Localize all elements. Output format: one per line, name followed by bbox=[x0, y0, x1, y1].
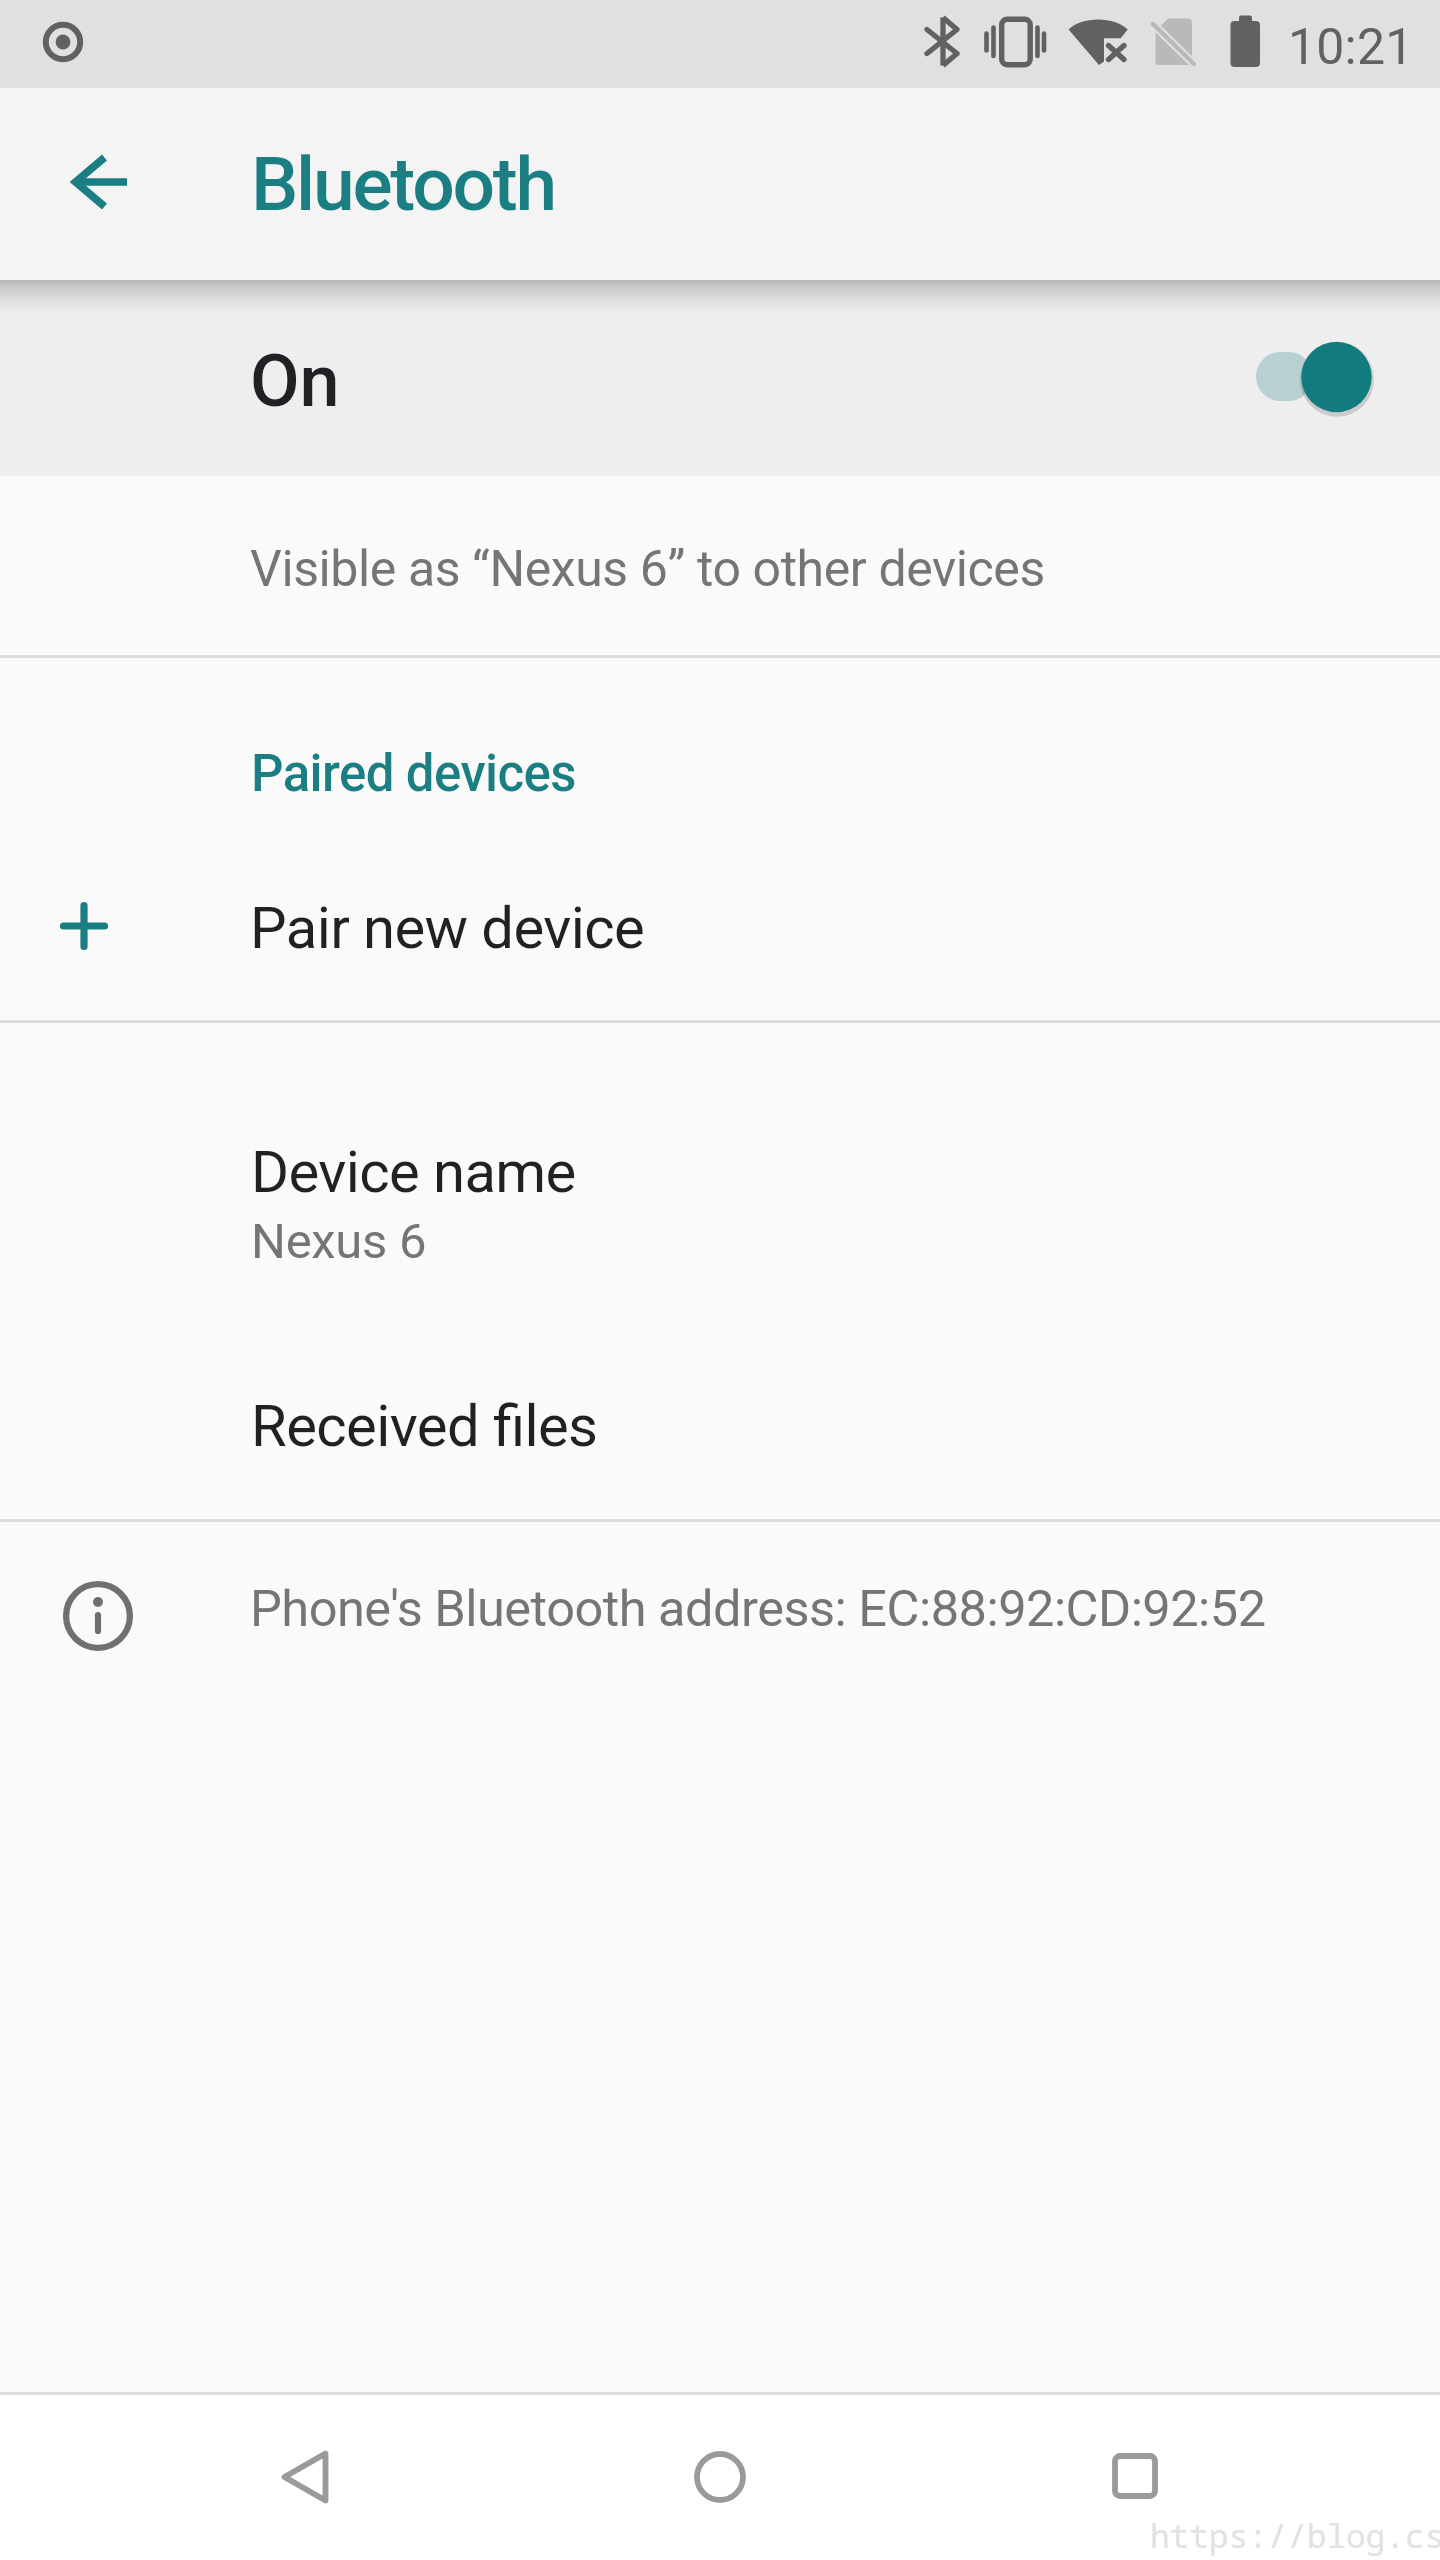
button[interactable]: Device name bbox=[0, 1023, 1440, 1278]
button[interactable]: On bbox=[0, 280, 1440, 476]
staticText: Nexus 6 bbox=[251, 1213, 427, 1270]
button[interactable]: Back bbox=[240, 2412, 370, 2542]
staticText: On bbox=[250, 339, 340, 423]
staticText: Paired devices bbox=[251, 744, 576, 804]
button[interactable]: Back bbox=[31, 126, 143, 238]
staticText: Phone's Bluetooth address: EC:88:92:CD:9… bbox=[250, 1579, 1266, 1638]
staticText: Device name bbox=[251, 1138, 576, 1206]
button[interactable]: Bluetooth on/off bbox=[1250, 336, 1378, 418]
staticText: https://blog.csdn.net/elzza bbox=[1150, 2513, 1440, 2558]
staticText: 10:21 bbox=[1288, 18, 1414, 77]
button[interactable]: Pair new device bbox=[0, 840, 1440, 1020]
staticText: Received files bbox=[251, 1392, 598, 1460]
button[interactable]: Received files bbox=[0, 1278, 1440, 1519]
staticText: Bluetooth bbox=[251, 140, 555, 228]
staticText: Pair new device bbox=[250, 894, 645, 962]
button[interactable]: Recent apps bbox=[1070, 2411, 1200, 2541]
staticText: Visible as “Nexus 6” to other devices bbox=[250, 540, 1045, 599]
button[interactable]: Home bbox=[655, 2412, 785, 2542]
